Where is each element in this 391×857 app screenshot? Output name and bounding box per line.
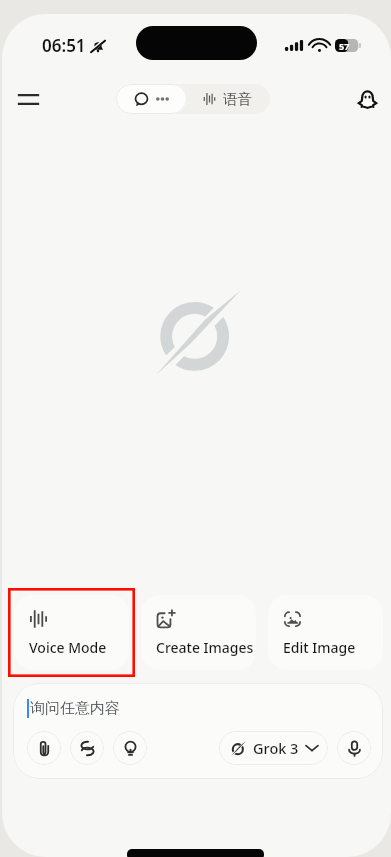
button[interactable]: Think xyxy=(113,731,147,765)
button[interactable]: 语音 xyxy=(187,84,270,114)
staticText: 询问任意内容 xyxy=(30,699,120,718)
button[interactable]: Voice Mode xyxy=(14,595,129,670)
button[interactable]: Attach file xyxy=(27,731,61,765)
staticText: 57 xyxy=(339,40,350,52)
button[interactable]: Grok 3 xyxy=(219,731,328,765)
button[interactable]: DeepSearch xyxy=(70,731,104,765)
button[interactable]: Menu xyxy=(8,79,48,119)
button[interactable]: Private chat xyxy=(348,80,386,118)
button[interactable] xyxy=(116,84,187,114)
staticText: Voice Mode xyxy=(29,638,129,657)
staticText: Grok 3 xyxy=(253,738,299,758)
button[interactable]: Edit Image xyxy=(268,595,383,670)
button[interactable]: Create Images xyxy=(141,595,256,670)
staticText: Create Images xyxy=(156,638,256,657)
button[interactable]: Voice input xyxy=(337,731,371,765)
staticText: Edit Image xyxy=(283,638,383,657)
staticText: 语音 xyxy=(223,90,252,108)
staticText: 06:51 xyxy=(42,34,86,57)
